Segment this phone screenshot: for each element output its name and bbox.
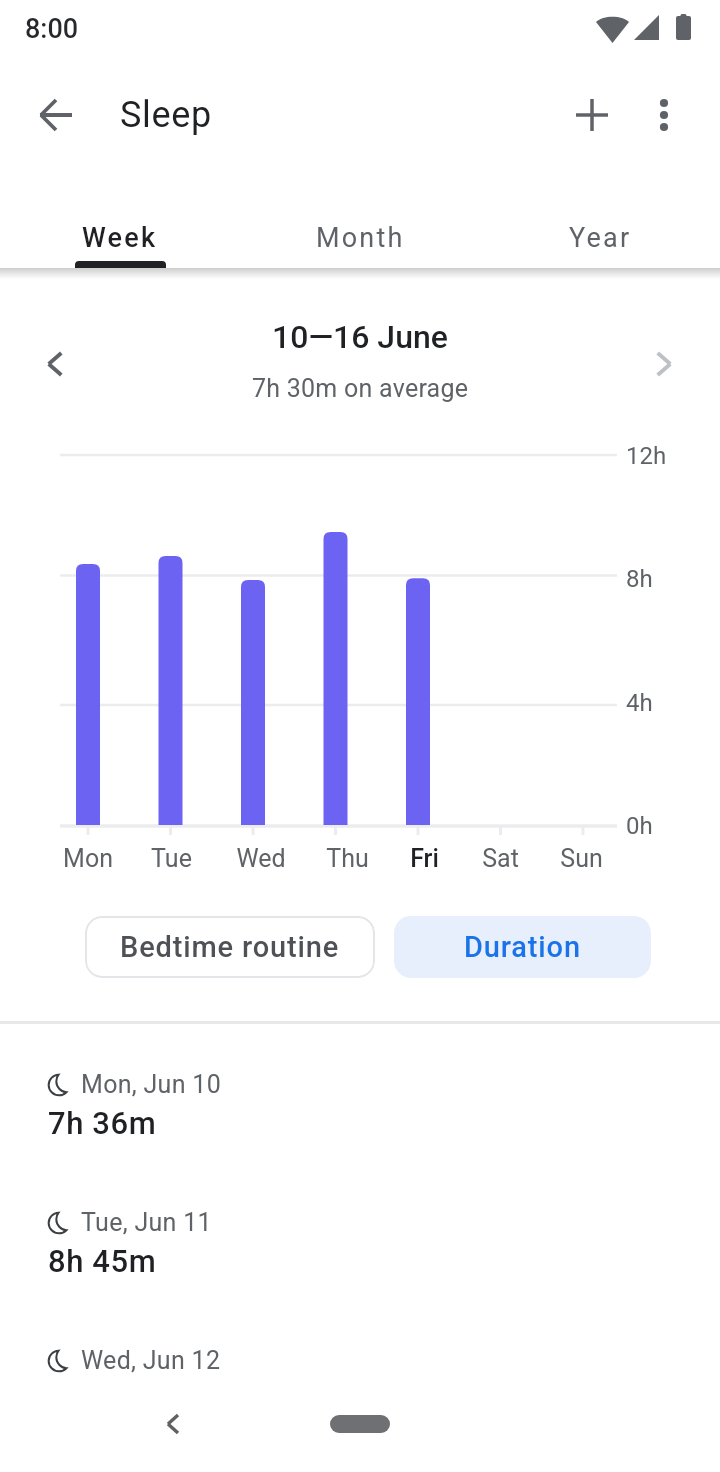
staticText: Duration [464, 930, 581, 964]
staticText: Bedtime routine [120, 930, 340, 964]
staticText: Tue, Jun 11 [81, 1208, 212, 1237]
staticText: 12h [626, 442, 667, 470]
staticText: Wed [236, 844, 286, 873]
staticText: Mon, Jun 10 [81, 1070, 221, 1099]
staticText: 7h 36m [48, 1105, 157, 1141]
button[interactable]: Mon, Jun 10 [0, 1060, 720, 1198]
staticText: 8h [626, 565, 653, 593]
button[interactable]: Next week [632, 332, 696, 396]
staticText: Thu [326, 844, 369, 873]
staticText: 4h [626, 689, 653, 717]
staticText: Mon [63, 844, 113, 873]
staticText: 7h 30m on average [252, 374, 469, 403]
staticText: Month [316, 222, 405, 254]
button[interactable]: Year [480, 172, 720, 268]
staticText: 8h 45m [48, 1243, 157, 1279]
staticText: Sleep [120, 94, 213, 136]
staticText: Sat [482, 844, 519, 873]
staticText: 0h [626, 812, 653, 840]
staticText: Wed, Jun 12 [81, 1346, 221, 1375]
button[interactable]: Tue, Jun 11 [0, 1198, 720, 1336]
button[interactable]: Duration [394, 916, 651, 978]
staticText: Week [82, 222, 158, 254]
button[interactable]: Home [330, 1415, 390, 1433]
button[interactable]: Week [0, 172, 240, 268]
button[interactable]: Previous week [23, 332, 87, 396]
button[interactable]: Bedtime routine [85, 916, 375, 978]
staticText: Year [569, 222, 632, 254]
button[interactable]: Add [560, 83, 624, 147]
button[interactable]: Wed, Jun 12 [0, 1336, 720, 1472]
button[interactable]: Month [240, 172, 480, 268]
staticText: Fri [410, 844, 439, 873]
button[interactable]: Back [149, 1400, 197, 1448]
button[interactable]: Back [24, 83, 88, 147]
button[interactable]: More options [632, 83, 696, 147]
staticText: 10—16 June [272, 318, 448, 356]
staticText: 8:00 [25, 13, 79, 45]
staticText: Tue [151, 844, 192, 873]
staticText: Sun [560, 844, 603, 873]
